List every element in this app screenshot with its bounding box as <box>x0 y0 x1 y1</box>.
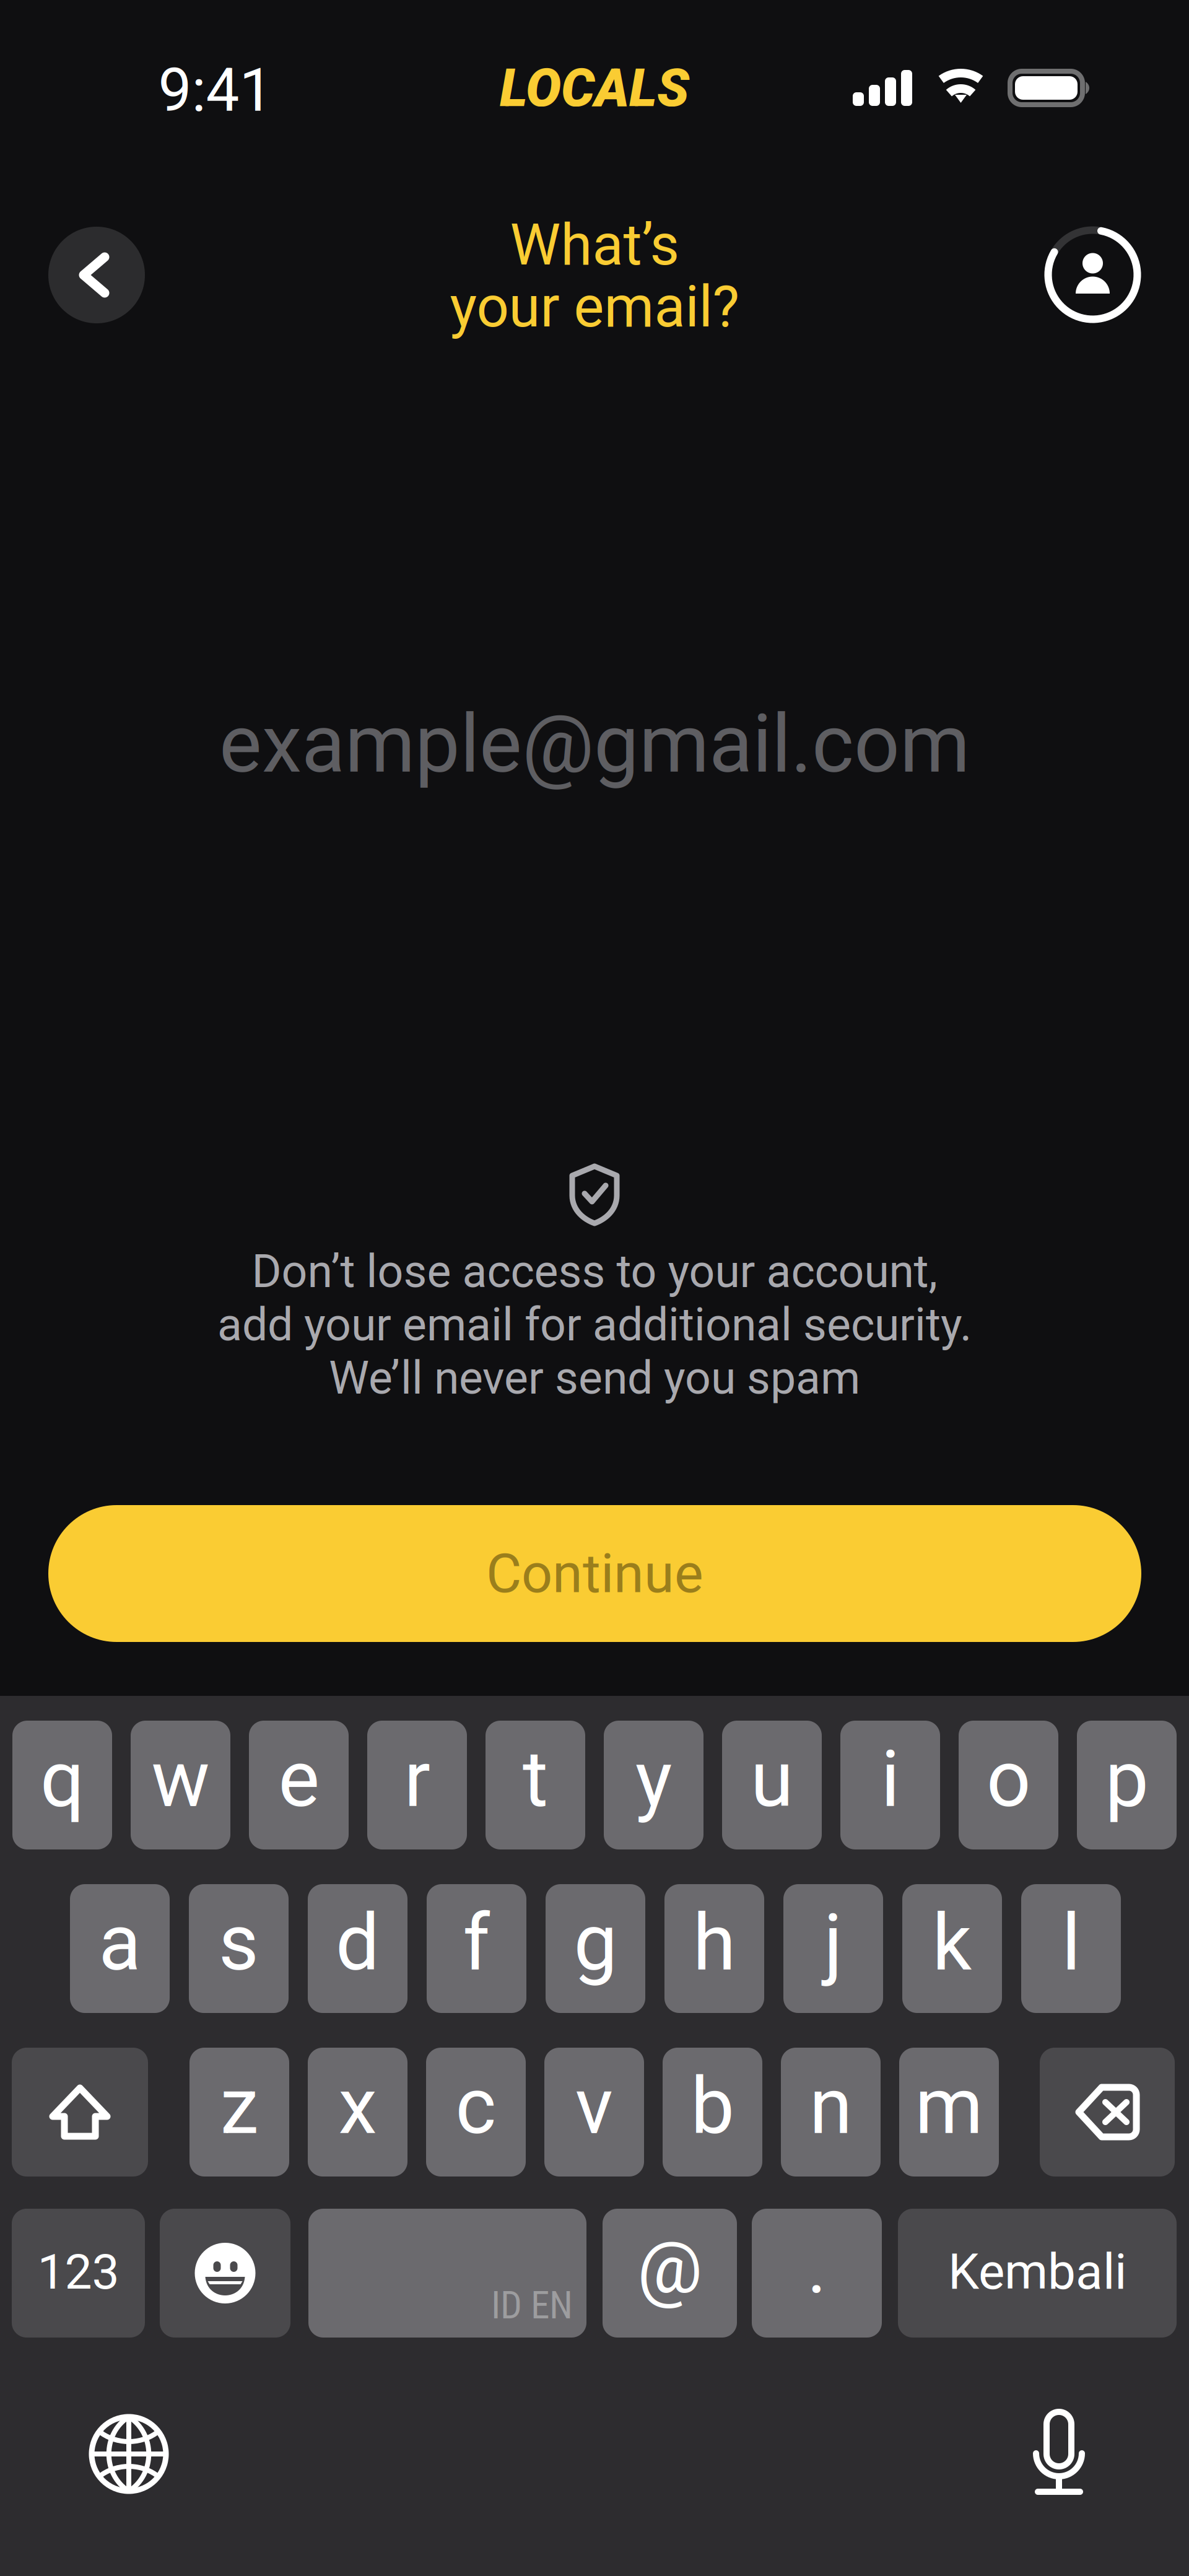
staticText: example@gmail.com <box>219 697 970 791</box>
button[interactable]: l <box>1021 1884 1121 2013</box>
button[interactable]: y <box>604 1721 703 1849</box>
button[interactable]: n <box>781 2048 881 2177</box>
button[interactable]: c <box>426 2048 526 2177</box>
button[interactable]: u <box>722 1721 822 1849</box>
staticText: We’ll never send you spam <box>329 1351 860 1405</box>
button[interactable]: Change keyboard <box>70 2395 188 2513</box>
staticText: e <box>278 1734 319 1825</box>
button[interactable]: Delete <box>1040 2048 1175 2177</box>
button[interactable]: Dictation <box>1000 2394 1118 2512</box>
staticText: c <box>455 2061 496 2152</box>
button[interactable]: o <box>959 1721 1058 1849</box>
staticText: u <box>751 1734 793 1825</box>
button[interactable]: q <box>12 1721 112 1849</box>
button[interactable]: s <box>189 1884 289 2013</box>
button[interactable]: Space <box>308 2209 586 2338</box>
staticText: o <box>986 1734 1030 1825</box>
staticText: q <box>40 1734 84 1825</box>
staticText: y <box>635 1734 672 1825</box>
button[interactable]: e <box>249 1721 349 1849</box>
staticText: h <box>693 1898 736 1989</box>
staticText: n <box>809 2061 852 2152</box>
button[interactable]: Back <box>48 227 145 323</box>
staticText: Kembali <box>948 2243 1126 2301</box>
button[interactable]: . <box>752 2209 882 2338</box>
staticText: v <box>575 2061 613 2152</box>
button[interactable]: 123 <box>12 2209 145 2338</box>
button[interactable]: Continue <box>48 1505 1141 1642</box>
button[interactable]: m <box>899 2048 999 2177</box>
button[interactable]: Profile <box>1044 226 1141 323</box>
button[interactable]: h <box>664 1884 764 2013</box>
staticText: g <box>574 1898 617 1989</box>
button[interactable]: z <box>189 2048 289 2177</box>
staticText: z <box>220 2061 259 2152</box>
button[interactable]: Emoji <box>160 2209 290 2338</box>
staticText: j <box>824 1898 843 1989</box>
staticText: What’s <box>510 212 679 278</box>
staticText: . <box>807 2225 826 2310</box>
staticText: m <box>915 2061 983 2152</box>
button[interactable]: r <box>367 1721 467 1849</box>
button[interactable]: f <box>427 1884 526 2013</box>
staticText: LOCALS <box>500 57 689 119</box>
button[interactable]: i <box>840 1721 940 1849</box>
staticText: your email? <box>450 274 739 340</box>
staticText: w <box>151 1734 210 1825</box>
staticText: p <box>1105 1734 1148 1825</box>
button[interactable]: Kembali <box>898 2209 1177 2338</box>
staticText: 9:41 <box>158 56 273 125</box>
staticText: r <box>404 1734 430 1825</box>
button[interactable]: g <box>546 1884 645 2013</box>
staticText: add your email for additional security. <box>217 1298 972 1351</box>
button[interactable]: x <box>308 2048 407 2177</box>
button[interactable]: t <box>486 1721 585 1849</box>
button[interactable]: j <box>783 1884 883 2013</box>
staticText: Continue <box>486 1542 703 1605</box>
staticText: b <box>691 2061 734 2152</box>
button[interactable]: a <box>70 1884 170 2013</box>
staticText: f <box>463 1898 490 1989</box>
button[interactable]: w <box>131 1721 230 1849</box>
staticText: s <box>219 1898 259 1989</box>
button[interactable]: d <box>308 1884 407 2013</box>
button[interactable]: Shift <box>12 2048 148 2177</box>
staticText: 123 <box>37 2243 119 2300</box>
staticText: Don’t lose access to your account, <box>252 1245 937 1298</box>
staticText: @ <box>637 2225 702 2310</box>
staticText: ID EN <box>491 2283 573 2328</box>
staticText: l <box>1062 1898 1080 1989</box>
staticText: k <box>932 1898 972 1989</box>
staticText: t <box>523 1734 548 1825</box>
staticText: i <box>881 1734 899 1825</box>
button[interactable]: b <box>663 2048 762 2177</box>
button[interactable]: k <box>902 1884 1002 2013</box>
button[interactable]: v <box>544 2048 644 2177</box>
staticText: d <box>336 1898 380 1989</box>
button[interactable]: @ <box>603 2209 737 2338</box>
staticText: x <box>338 2061 377 2152</box>
staticText: a <box>99 1898 141 1989</box>
button[interactable]: p <box>1077 1721 1177 1849</box>
